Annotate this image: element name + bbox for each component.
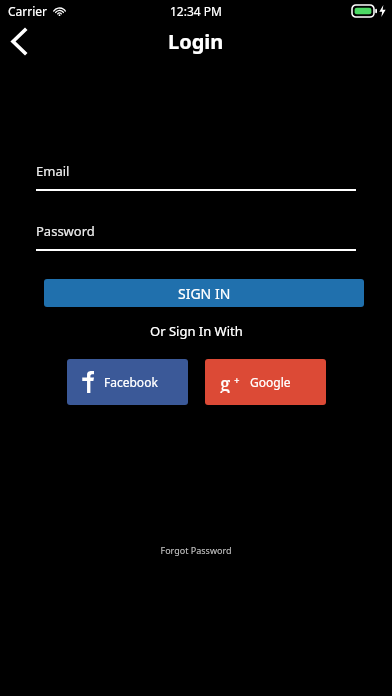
- button[interactable]: Back: [2, 24, 36, 58]
- staticText: 12:34 PM: [170, 3, 222, 19]
- staticText: +: [234, 374, 240, 388]
- staticText: Facebook: [104, 374, 158, 390]
- staticText: Carrier: [8, 3, 48, 19]
- staticText: Forgot Password: [160, 544, 232, 556]
- staticText: Google: [250, 374, 291, 390]
- button[interactable]: SIGN IN: [44, 279, 364, 307]
- button[interactable]: g: [205, 359, 326, 405]
- button[interactable]: Forgot Password: [154, 538, 238, 562]
- staticText: g: [220, 371, 231, 393]
- staticText: Password: [36, 222, 95, 240]
- staticText: Or Sign In With: [150, 322, 243, 340]
- staticText: SIGN IN: [178, 284, 231, 303]
- button[interactable]: Facebook: [67, 359, 188, 405]
- staticText: Login: [168, 28, 224, 55]
- staticText: Email: [36, 162, 70, 180]
- button[interactable]: Email: [36, 162, 356, 191]
- button[interactable]: Password: [36, 222, 356, 251]
